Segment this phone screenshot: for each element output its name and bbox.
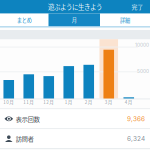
staticText: 6,324 — [127, 135, 145, 142]
button[interactable]: 訪問者 — [0, 129, 150, 148]
staticText: 2月 — [85, 99, 93, 105]
button[interactable]: 詳細 — [100, 13, 150, 26]
staticText: 表示回数 — [16, 114, 40, 123]
staticText: 12月 — [43, 99, 54, 105]
staticText: 詳細 — [120, 16, 130, 24]
staticText: 4月 — [125, 99, 133, 105]
staticText: 完了 — [131, 2, 143, 11]
button[interactable]: 表示回数 — [0, 109, 150, 128]
staticText: 1月 — [65, 99, 73, 105]
staticText: 11月 — [23, 99, 34, 105]
staticText: 3月 — [105, 99, 113, 105]
staticText: 遊ぶように生きよう — [48, 2, 102, 11]
staticText: 10000 — [135, 42, 149, 48]
button[interactable]: 月 — [48, 13, 100, 26]
button[interactable]: 完了 — [131, 2, 150, 11]
staticText: 9,366 — [127, 115, 145, 123]
staticText: 月 — [72, 16, 77, 24]
staticText: まとめ — [17, 16, 32, 24]
staticText: 10月 — [3, 99, 14, 105]
staticText: 訪問者 — [16, 134, 34, 143]
button[interactable]: まとめ — [0, 13, 48, 26]
staticText: 5000 — [137, 68, 149, 74]
